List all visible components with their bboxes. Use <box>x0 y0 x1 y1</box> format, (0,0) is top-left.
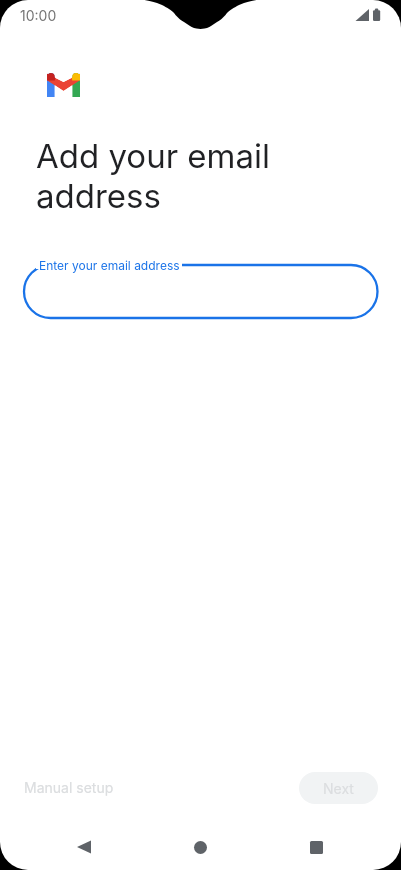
staticText: Enter your email address <box>39 258 180 273</box>
staticText: Add your email address <box>36 136 271 216</box>
button[interactable]: Home <box>172 824 228 870</box>
staticText: 10:00 <box>20 7 57 24</box>
button[interactable]: Next <box>299 772 378 804</box>
button[interactable]: Back <box>56 824 112 870</box>
staticText: Next <box>323 780 354 797</box>
button[interactable]: Recents <box>288 824 344 870</box>
staticText: Manual setup <box>24 779 114 796</box>
button[interactable]: Manual setup <box>22 772 116 803</box>
